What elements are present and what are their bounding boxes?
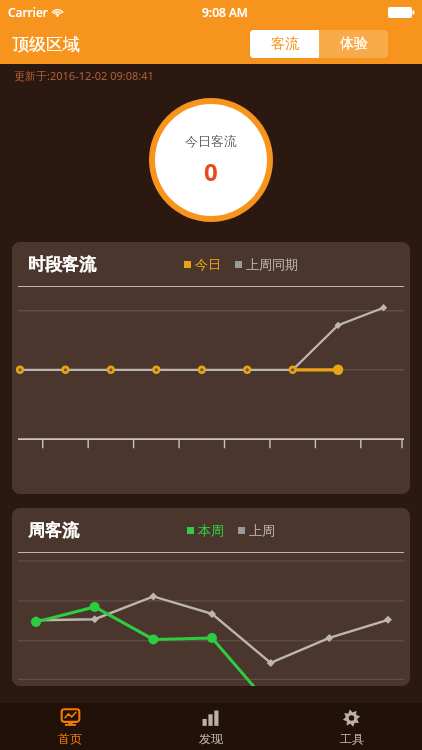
staticText: 9:08 AM (202, 4, 248, 20)
staticText: 更新于:2016-12-02 09:08:41 (14, 68, 154, 83)
button[interactable]: 工具 (281, 703, 422, 750)
button[interactable]: 时段客流 (12, 242, 410, 494)
button[interactable]: 首页 (0, 703, 140, 750)
button[interactable]: 体验 (319, 30, 388, 58)
staticText: 上周同期 (246, 256, 298, 272)
staticText: 0 (204, 155, 218, 188)
staticText: 今日 (195, 256, 221, 272)
staticText: 体验 (340, 35, 368, 53)
staticText: 时段客流 (28, 254, 96, 275)
staticText: 今日客流 (185, 133, 237, 149)
staticText: 工具 (340, 731, 364, 746)
staticText: Carrier (8, 4, 48, 20)
staticText: 客流 (271, 35, 299, 53)
staticText: 周客流 (28, 520, 79, 541)
button[interactable]: 发现 (140, 703, 281, 750)
staticText: 上周 (249, 522, 275, 538)
staticText: 本周 (198, 522, 224, 538)
staticText: 首页 (58, 731, 82, 746)
staticText: 发现 (199, 731, 223, 746)
button[interactable]: 周客流 (12, 508, 410, 686)
button[interactable]: 客流 (250, 30, 319, 58)
staticText: 顶级区域 (12, 34, 80, 55)
